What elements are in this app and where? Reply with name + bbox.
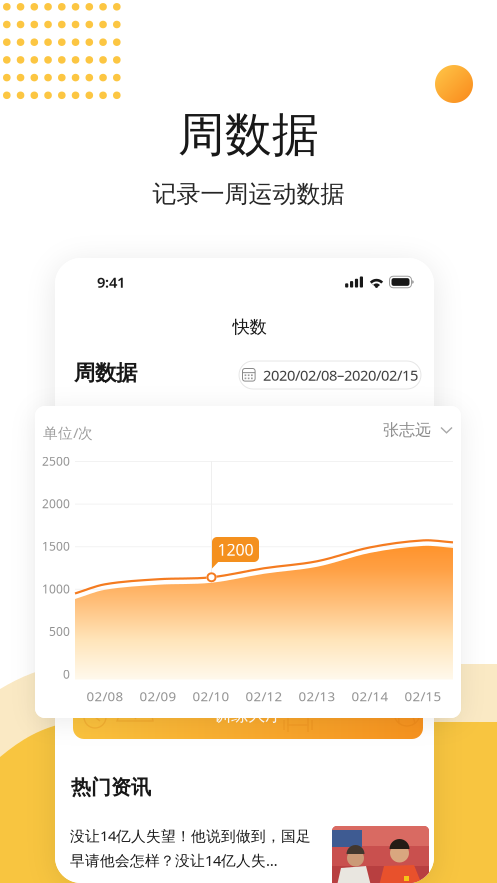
button[interactable]: 训练大厅: [73, 691, 423, 739]
staticText: 02/08: [86, 687, 123, 705]
staticText: 02/12: [245, 687, 282, 705]
button[interactable]: 没让14亿人失望！他说到做到，国足早请他会怎样？没让14亿人失…: [70, 826, 429, 883]
button[interactable]: 张志远: [383, 417, 453, 443]
staticText: 02/09: [139, 687, 176, 705]
button[interactable]: 2020/02/08–2020/02/15: [239, 361, 421, 389]
staticText: 02/14: [351, 687, 388, 705]
staticText: 训练大厅: [214, 704, 282, 726]
staticText: 2020/02/08–2020/02/15: [263, 365, 418, 385]
staticText: 热门资讯: [71, 775, 151, 800]
staticText: 单位/次: [43, 423, 93, 442]
staticText: 2000: [42, 496, 70, 511]
staticText: 02/13: [298, 687, 335, 705]
staticText: 500: [49, 623, 70, 639]
staticText: 张志远: [383, 420, 431, 440]
staticText: 1000: [42, 581, 70, 597]
staticText: 1500: [42, 538, 70, 554]
staticText: 9:41: [97, 272, 125, 292]
staticText: 记录一周运动数据: [152, 179, 344, 209]
staticText: 02/15: [404, 687, 441, 705]
staticText: 周数据: [74, 360, 137, 386]
staticText: 周数据: [178, 106, 319, 164]
staticText: 1200: [217, 539, 253, 560]
staticText: 快数: [232, 316, 266, 338]
staticText: 没让14亿人失望！他说到做到，国足早请他会怎样？没让14亿人失…: [70, 826, 311, 870]
staticText: 02/10: [192, 687, 229, 705]
staticText: 0: [63, 666, 70, 682]
staticText: 2500: [42, 453, 70, 469]
